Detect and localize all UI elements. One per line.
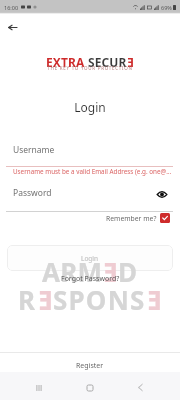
button[interactable]: Recents — [28, 377, 49, 398]
staticText: Username must be a valid Email Address (… — [13, 167, 173, 176]
button[interactable]: Home — [79, 377, 100, 398]
staticText: EXTRA — [46, 54, 88, 70]
button[interactable]: Forgot Password? — [61, 274, 120, 284]
button[interactable]: Remember me? — [106, 212, 170, 224]
staticText: E — [103, 254, 118, 289]
staticText: ARM — [42, 254, 103, 289]
staticText: Password — [13, 187, 52, 199]
staticText: SECUR — [88, 54, 127, 70]
button[interactable]: Show password — [154, 187, 169, 202]
button[interactable]: Back — [4, 19, 21, 36]
staticText: E — [146, 282, 162, 317]
button[interactable]: Register — [0, 356, 180, 375]
staticText: D — [118, 254, 138, 289]
staticText: THE KEY TO YOUR PROTECTION — [0, 65, 180, 71]
staticText: Login — [0, 99, 180, 115]
staticText: R — [18, 282, 37, 317]
staticText: 16:00 — [4, 4, 19, 11]
staticText: Register — [76, 361, 104, 371]
button[interactable]: Login — [7, 245, 173, 271]
button[interactable]: Back — [130, 377, 151, 398]
staticText: E — [127, 54, 134, 70]
staticText: Username — [13, 144, 55, 156]
staticText: Remember me? — [106, 214, 157, 223]
staticText: E — [37, 282, 53, 317]
staticText: SPONS — [53, 282, 146, 317]
staticText: Login — [81, 254, 99, 263]
staticText: 69% — [161, 4, 172, 11]
